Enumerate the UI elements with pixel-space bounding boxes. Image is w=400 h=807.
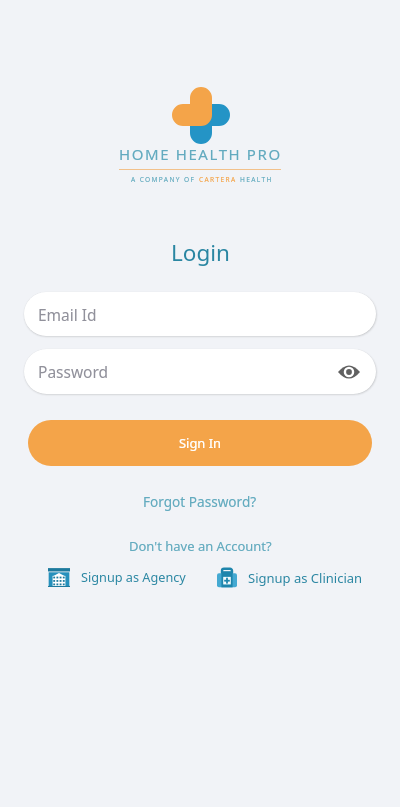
- staticText: HEALTH: [240, 175, 273, 184]
- staticText: Don't have an Account?: [129, 537, 272, 555]
- staticText: HOME HEALTH PRO: [119, 144, 282, 164]
- staticText: CARTERA: [199, 175, 240, 184]
- button[interactable]: Forgot Password?: [137, 489, 263, 514]
- staticText: Email Id: [38, 304, 97, 325]
- staticText: Forgot Password?: [143, 492, 257, 511]
- button[interactable]: Sign In: [28, 420, 372, 466]
- staticText: A COMPANY OF: [131, 175, 199, 184]
- staticText: Login: [171, 237, 230, 268]
- button[interactable]: Email Id: [24, 292, 376, 336]
- button[interactable]: Password: [24, 349, 376, 394]
- staticText: Sign In: [179, 434, 221, 452]
- staticText: Signup as Agency: [81, 568, 186, 585]
- button[interactable]: Signup as Agency: [48, 566, 186, 587]
- staticText: Password: [38, 361, 109, 382]
- other: Show password: [338, 364, 360, 380]
- staticText: Signup as Clinician: [248, 569, 363, 587]
- button[interactable]: Signup as Clinician: [217, 567, 363, 588]
